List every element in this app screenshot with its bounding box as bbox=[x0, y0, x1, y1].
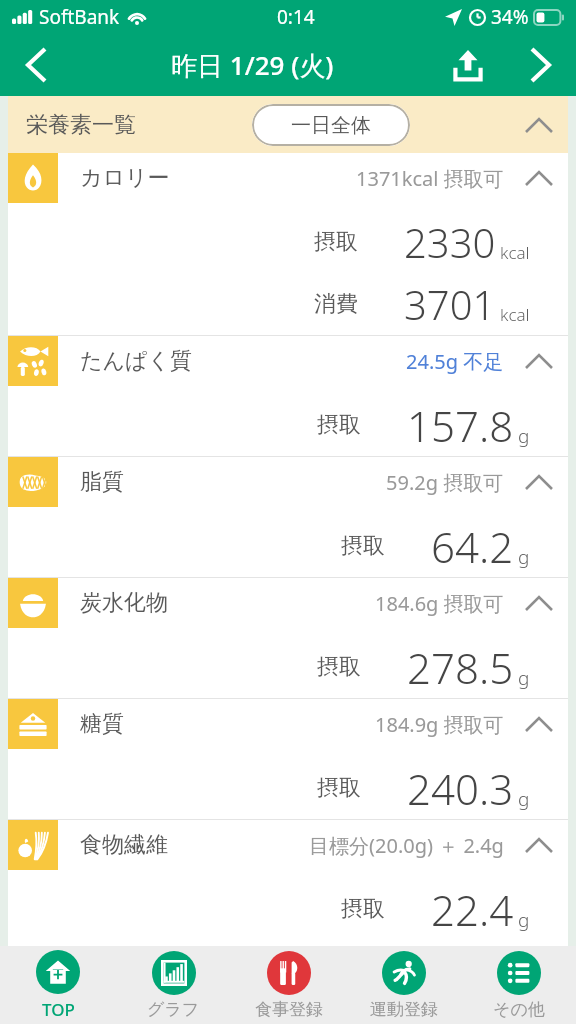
staticText: 目標分(20.0g) ＋ 2.4g bbox=[309, 832, 504, 859]
staticText: 0:14 bbox=[277, 4, 315, 30]
staticText: 食物繊維 bbox=[80, 831, 168, 859]
staticText: g bbox=[518, 907, 530, 933]
staticText: 2330 bbox=[404, 215, 496, 269]
staticText: g bbox=[518, 544, 530, 570]
staticText: 摂取 bbox=[341, 532, 385, 560]
staticText: 炭水化物 bbox=[80, 589, 168, 617]
button[interactable]: 運動登録 bbox=[346, 946, 461, 1024]
staticText: たんぱく質 bbox=[80, 347, 193, 375]
staticText: その他 bbox=[493, 999, 545, 1020]
staticText: 糖質 bbox=[80, 710, 124, 738]
button[interactable]: 脂質 bbox=[8, 457, 568, 515]
staticText: 59.2g 摂取可 bbox=[386, 469, 504, 496]
button[interactable]: Previous day bbox=[0, 34, 72, 96]
staticText: kcal bbox=[500, 241, 530, 264]
staticText: 184.9g 摂取可 bbox=[375, 711, 504, 738]
button[interactable]: 食事登録 bbox=[231, 946, 346, 1024]
staticText: 摂取 bbox=[314, 228, 358, 256]
button[interactable]: 栄養素一覧 bbox=[8, 96, 568, 153]
staticText: 一日全体 bbox=[291, 113, 371, 138]
staticText: 3701 bbox=[404, 277, 496, 331]
staticText: カロリー bbox=[80, 164, 170, 192]
button[interactable]: 食物繊維 bbox=[8, 820, 568, 878]
staticText: 1371kcal 摂取可 bbox=[356, 165, 504, 192]
staticText: 摂取 bbox=[317, 774, 361, 802]
staticText: 食事登録 bbox=[255, 999, 323, 1020]
staticText: 脂質 bbox=[80, 468, 124, 496]
staticText: kcal bbox=[500, 303, 530, 326]
button[interactable]: たんぱく質 bbox=[8, 336, 568, 394]
staticText: 184.6g 摂取可 bbox=[375, 590, 504, 617]
staticText: TOP bbox=[42, 998, 75, 1021]
staticText: 運動登録 bbox=[370, 999, 438, 1020]
staticText: 栄養素一覧 bbox=[26, 111, 136, 139]
button[interactable]: グラフ bbox=[116, 946, 231, 1024]
staticText: g bbox=[518, 423, 530, 449]
staticText: 昨日 1/29 (火) bbox=[171, 47, 334, 83]
staticText: SoftBank bbox=[39, 4, 120, 30]
staticText: 消費 bbox=[314, 290, 358, 318]
button[interactable]: カロリー bbox=[8, 153, 568, 211]
staticText: g bbox=[518, 665, 530, 691]
staticText: 摂取 bbox=[317, 411, 361, 439]
staticText: 64.2 bbox=[431, 518, 514, 575]
button[interactable]: 一日全体 bbox=[252, 104, 410, 146]
staticText: 24.5g 不足 bbox=[406, 348, 504, 375]
button[interactable]: その他 bbox=[461, 946, 576, 1024]
button[interactable]: TOP bbox=[0, 946, 116, 1024]
staticText: 278.5 bbox=[407, 639, 514, 696]
staticText: 157.8 bbox=[407, 397, 514, 454]
staticText: 摂取 bbox=[317, 653, 361, 681]
button[interactable]: 糖質 bbox=[8, 699, 568, 757]
button[interactable]: Next day bbox=[504, 34, 576, 96]
staticText: 摂取 bbox=[341, 895, 385, 923]
button[interactable]: 炭水化物 bbox=[8, 578, 568, 636]
staticText: グラフ bbox=[147, 999, 200, 1020]
staticText: 22.4 bbox=[431, 881, 514, 938]
staticText: g bbox=[518, 786, 530, 812]
button[interactable]: Share bbox=[432, 34, 504, 96]
staticText: 34% bbox=[491, 4, 529, 30]
staticText: 240.3 bbox=[407, 760, 514, 817]
